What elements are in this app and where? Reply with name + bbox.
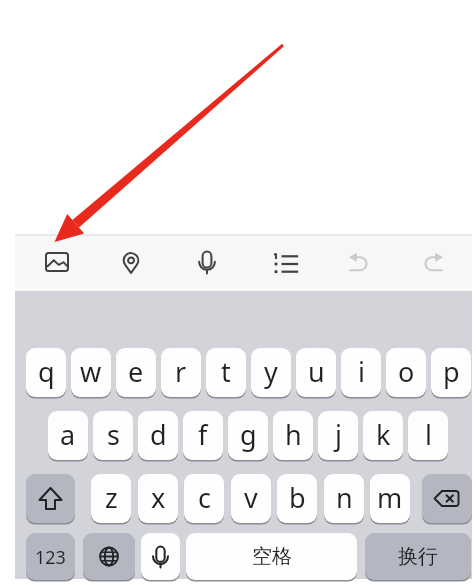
staticText: l — [425, 416, 432, 453]
staticText: x — [151, 479, 166, 516]
button[interactable]: w — [71, 348, 111, 397]
button[interactable]: z — [91, 474, 131, 523]
staticText: 换行 — [398, 544, 438, 569]
button[interactable]: r — [161, 348, 201, 397]
button[interactable]: q — [26, 348, 66, 397]
button[interactable]: 空格 — [186, 533, 357, 580]
button[interactable] — [26, 474, 75, 523]
staticText: y — [264, 353, 278, 390]
staticText: 空格 — [252, 544, 292, 569]
button[interactable]: p — [431, 348, 471, 397]
staticText: d — [150, 416, 167, 453]
staticText: 123 — [35, 545, 66, 570]
button[interactable] — [111, 242, 151, 282]
staticText: q — [38, 353, 55, 390]
button[interactable]: v — [231, 474, 271, 523]
staticText: h — [285, 416, 302, 453]
button[interactable]: e — [116, 348, 156, 397]
staticText: c — [198, 479, 211, 516]
button[interactable] — [339, 243, 379, 283]
button[interactable]: f — [183, 411, 223, 460]
staticText: b — [289, 479, 306, 516]
button[interactable]: c — [184, 474, 224, 523]
button[interactable] — [37, 242, 77, 282]
button[interactable] — [141, 533, 180, 580]
button[interactable]: 换行 — [365, 533, 471, 580]
staticText: p — [443, 353, 460, 390]
staticText: u — [308, 353, 325, 390]
staticText: k — [376, 416, 391, 453]
button[interactable]: t — [206, 348, 246, 397]
staticText: w — [80, 353, 102, 390]
button[interactable] — [83, 533, 135, 580]
button[interactable]: 123 — [26, 533, 75, 580]
button[interactable]: n — [324, 474, 364, 523]
button[interactable] — [264, 244, 304, 284]
button[interactable]: u — [296, 348, 336, 397]
staticText: z — [105, 479, 118, 516]
button[interactable] — [413, 243, 453, 283]
button[interactable]: h — [273, 411, 313, 460]
button[interactable]: y — [251, 348, 291, 397]
button[interactable]: i — [341, 348, 381, 397]
button[interactable]: g — [228, 411, 268, 460]
staticText: v — [244, 479, 258, 516]
staticText: s — [107, 416, 120, 453]
staticText: e — [128, 353, 144, 390]
button[interactable] — [187, 242, 227, 282]
button[interactable]: b — [277, 474, 317, 523]
staticText: t — [221, 353, 231, 390]
button[interactable] — [422, 474, 472, 523]
button[interactable]: j — [318, 411, 358, 460]
button[interactable]: d — [138, 411, 178, 460]
staticText: o — [398, 353, 415, 390]
button[interactable]: a — [48, 411, 88, 460]
button[interactable]: m — [370, 474, 410, 523]
staticText: m — [377, 479, 403, 516]
button[interactable]: l — [408, 411, 448, 460]
button[interactable]: x — [138, 474, 178, 523]
button[interactable]: s — [93, 411, 133, 460]
staticText: a — [60, 416, 76, 453]
staticText: j — [335, 416, 342, 453]
button[interactable]: o — [386, 348, 426, 397]
staticText: n — [336, 479, 353, 516]
staticText: i — [358, 353, 365, 390]
button[interactable]: k — [363, 411, 403, 460]
staticText: g — [240, 416, 257, 453]
staticText: r — [175, 353, 187, 390]
staticText: f — [198, 416, 208, 453]
